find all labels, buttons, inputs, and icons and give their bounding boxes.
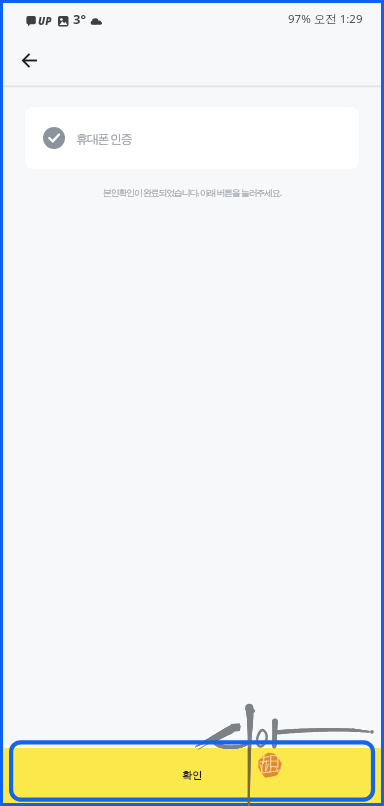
staticText: UP (38, 14, 52, 28)
staticText: 97% 오전 1:29 (288, 11, 363, 27)
button[interactable]: Back (7, 38, 51, 82)
staticText: 휴대폰 인증 (76, 130, 132, 146)
staticText: 확인 (182, 769, 202, 782)
staticText: 3° (73, 10, 86, 28)
button[interactable]: 확인 (3, 748, 381, 803)
button[interactable]: 휴대폰 인증 (25, 107, 359, 169)
staticText: 본인확인이 완료되었습니다. 아래 버튼을 눌러주세요. (3, 186, 381, 198)
